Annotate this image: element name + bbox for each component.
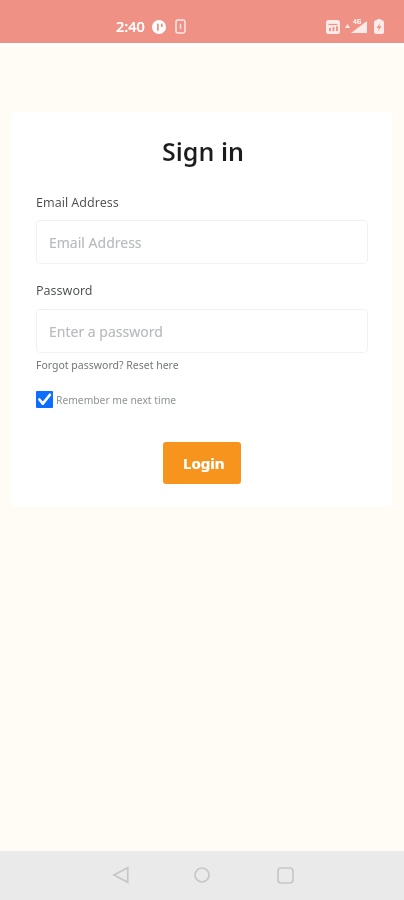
staticText: Email Address [36,194,119,211]
staticText: Remember me next time [56,393,177,407]
staticText: Sign in [37,134,369,168]
staticText: Login [183,453,225,473]
button[interactable]: Forgot password? Reset here [36,358,179,372]
staticText: Password [36,282,93,299]
button[interactable]: Remember me next time [36,391,177,408]
button[interactable]: Login [163,442,241,484]
button[interactable]: Email Address [36,220,368,264]
button[interactable]: Home [178,851,226,899]
button[interactable]: Recents [261,851,309,899]
button[interactable]: Back [97,851,145,899]
staticText: 2:40 [116,16,145,36]
staticText: 4G [353,17,362,26]
staticText: Email Address [49,233,142,252]
button[interactable]: Enter a password [36,309,368,353]
staticText: Enter a password [49,322,163,341]
